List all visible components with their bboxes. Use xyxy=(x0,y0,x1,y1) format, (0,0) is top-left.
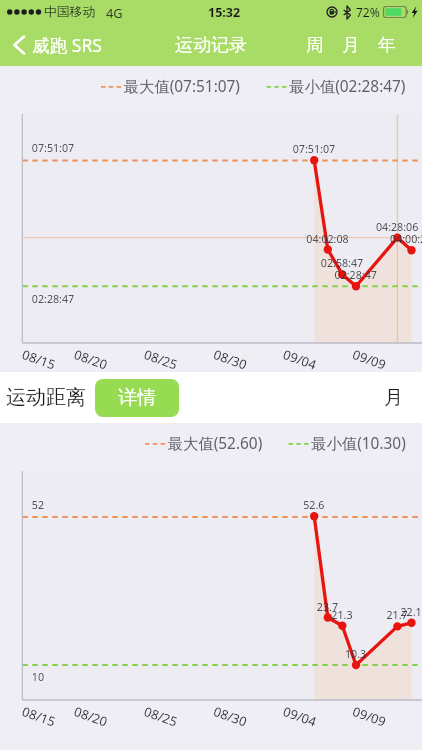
button[interactable]: 年 xyxy=(369,25,405,65)
button[interactable]: 月 xyxy=(333,25,369,65)
staticText: 运动记录 xyxy=(175,34,247,57)
staticText: 详情 xyxy=(118,386,156,410)
staticText: 中国移动 xyxy=(44,4,96,20)
staticText: 月 xyxy=(342,34,360,56)
staticText: 4G xyxy=(106,4,123,21)
staticText: 运动距离 xyxy=(6,385,86,410)
other: Back xyxy=(13,35,25,55)
staticText: 威跑 SRS xyxy=(32,33,103,57)
staticText: 72% xyxy=(356,4,380,20)
button[interactable]: Back xyxy=(0,33,113,57)
staticText: 年 xyxy=(378,34,396,56)
staticText: 月 xyxy=(384,386,403,410)
staticText: 15:32 xyxy=(208,4,241,21)
staticText: 周 xyxy=(306,34,324,56)
button[interactable]: 周 xyxy=(297,25,333,65)
button[interactable]: 详情 xyxy=(95,379,179,417)
